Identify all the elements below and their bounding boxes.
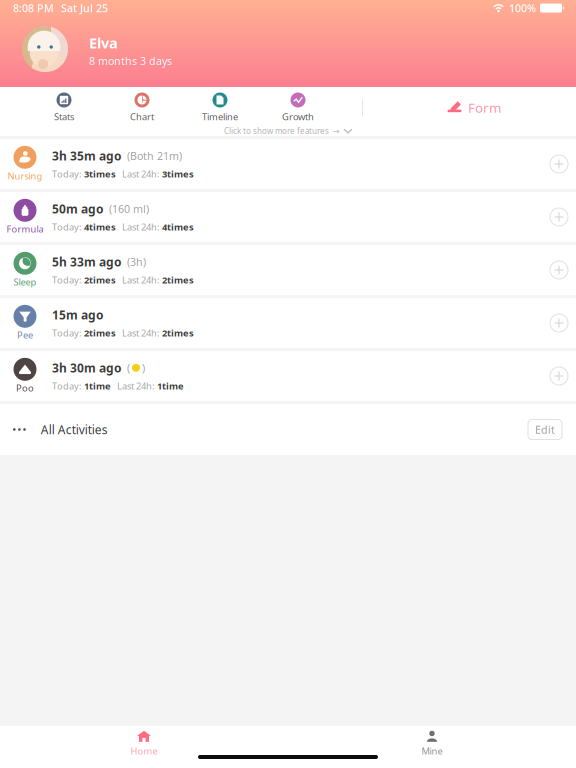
staticText: ) (142, 361, 145, 375)
button[interactable]: Mine (288, 728, 576, 760)
staticText: Formula (6, 223, 43, 235)
button[interactable]: Chart (103, 90, 181, 126)
staticText: 50m ago (52, 201, 104, 217)
staticText: (160 ml) (109, 202, 149, 216)
staticText: Pee (17, 329, 33, 341)
staticText: Sat Jul 25 (61, 1, 108, 15)
staticText: Growth (282, 110, 314, 123)
staticText: Last 24h: (111, 380, 157, 392)
button[interactable]: All Activities (0, 404, 576, 455)
staticText: Stats (54, 110, 74, 123)
staticText: Poo (16, 382, 34, 394)
staticText: 2times (162, 274, 194, 286)
button[interactable]: Form (462, 90, 576, 126)
button[interactable]: Add entry (542, 142, 576, 186)
staticText: (3h) (127, 255, 146, 269)
button[interactable]: Add entry (542, 195, 576, 239)
staticText: Today: (52, 327, 84, 339)
button[interactable]: Nursing (0, 139, 576, 192)
staticText: Timeline (202, 110, 238, 123)
button[interactable]: Pee (0, 298, 576, 351)
button[interactable]: Timeline (181, 90, 259, 126)
button[interactable]: Stats (25, 90, 103, 126)
staticText: 15m ago (52, 307, 104, 323)
button[interactable]: Add entry (542, 354, 576, 398)
staticText: Chart (130, 110, 154, 123)
staticText: ( (127, 361, 130, 375)
staticText: Mine (421, 745, 442, 757)
staticText: Nursing (7, 170, 42, 182)
staticText: 3times (162, 168, 194, 180)
staticText: 100% (509, 1, 536, 15)
staticText: 8:08 PM (13, 1, 54, 15)
staticText: Click to show more features → (224, 126, 340, 136)
staticText: Home (130, 745, 157, 757)
button[interactable]: Home (0, 728, 288, 760)
staticText: Form (468, 99, 501, 116)
staticText: 2times (84, 274, 116, 286)
staticText: 8 months 3 days (89, 54, 172, 68)
staticText: 3times (84, 168, 116, 180)
button[interactable]: Form (447, 90, 462, 126)
staticText: Today: (52, 380, 84, 392)
staticText: Today: (52, 274, 84, 286)
staticText: Elva (89, 33, 118, 53)
staticText: 4times (162, 221, 194, 233)
staticText: Last 24h: (116, 221, 162, 233)
button[interactable]: Add entry (542, 248, 576, 292)
staticText: 2times (162, 327, 194, 339)
button[interactable]: Baby profile photo (0, 26, 68, 72)
button[interactable]: Growth (259, 90, 337, 126)
staticText: (Both 21m) (127, 149, 182, 163)
staticText: 5h 33m ago (52, 254, 122, 270)
staticText: Sleep (13, 276, 36, 288)
staticText: Last 24h: (116, 168, 162, 180)
staticText: Last 24h: (116, 274, 162, 286)
staticText: Edit (535, 422, 555, 437)
staticText: Last 24h: (116, 327, 162, 339)
staticText: 1time (157, 380, 184, 392)
staticText: 2times (84, 327, 116, 339)
staticText: Today: (52, 221, 84, 233)
button[interactable]: Formula (0, 192, 576, 245)
button[interactable]: Add entry (542, 301, 576, 345)
staticText: All Activities (41, 421, 108, 437)
button[interactable]: Poo (0, 351, 576, 404)
button[interactable]: Sleep (0, 245, 576, 298)
staticText: 3h 35m ago (52, 148, 122, 164)
staticText: 3h 30m ago (52, 360, 122, 376)
staticText: 1time (84, 380, 111, 392)
staticText: Today: (52, 168, 84, 180)
staticText: 4times (84, 221, 116, 233)
